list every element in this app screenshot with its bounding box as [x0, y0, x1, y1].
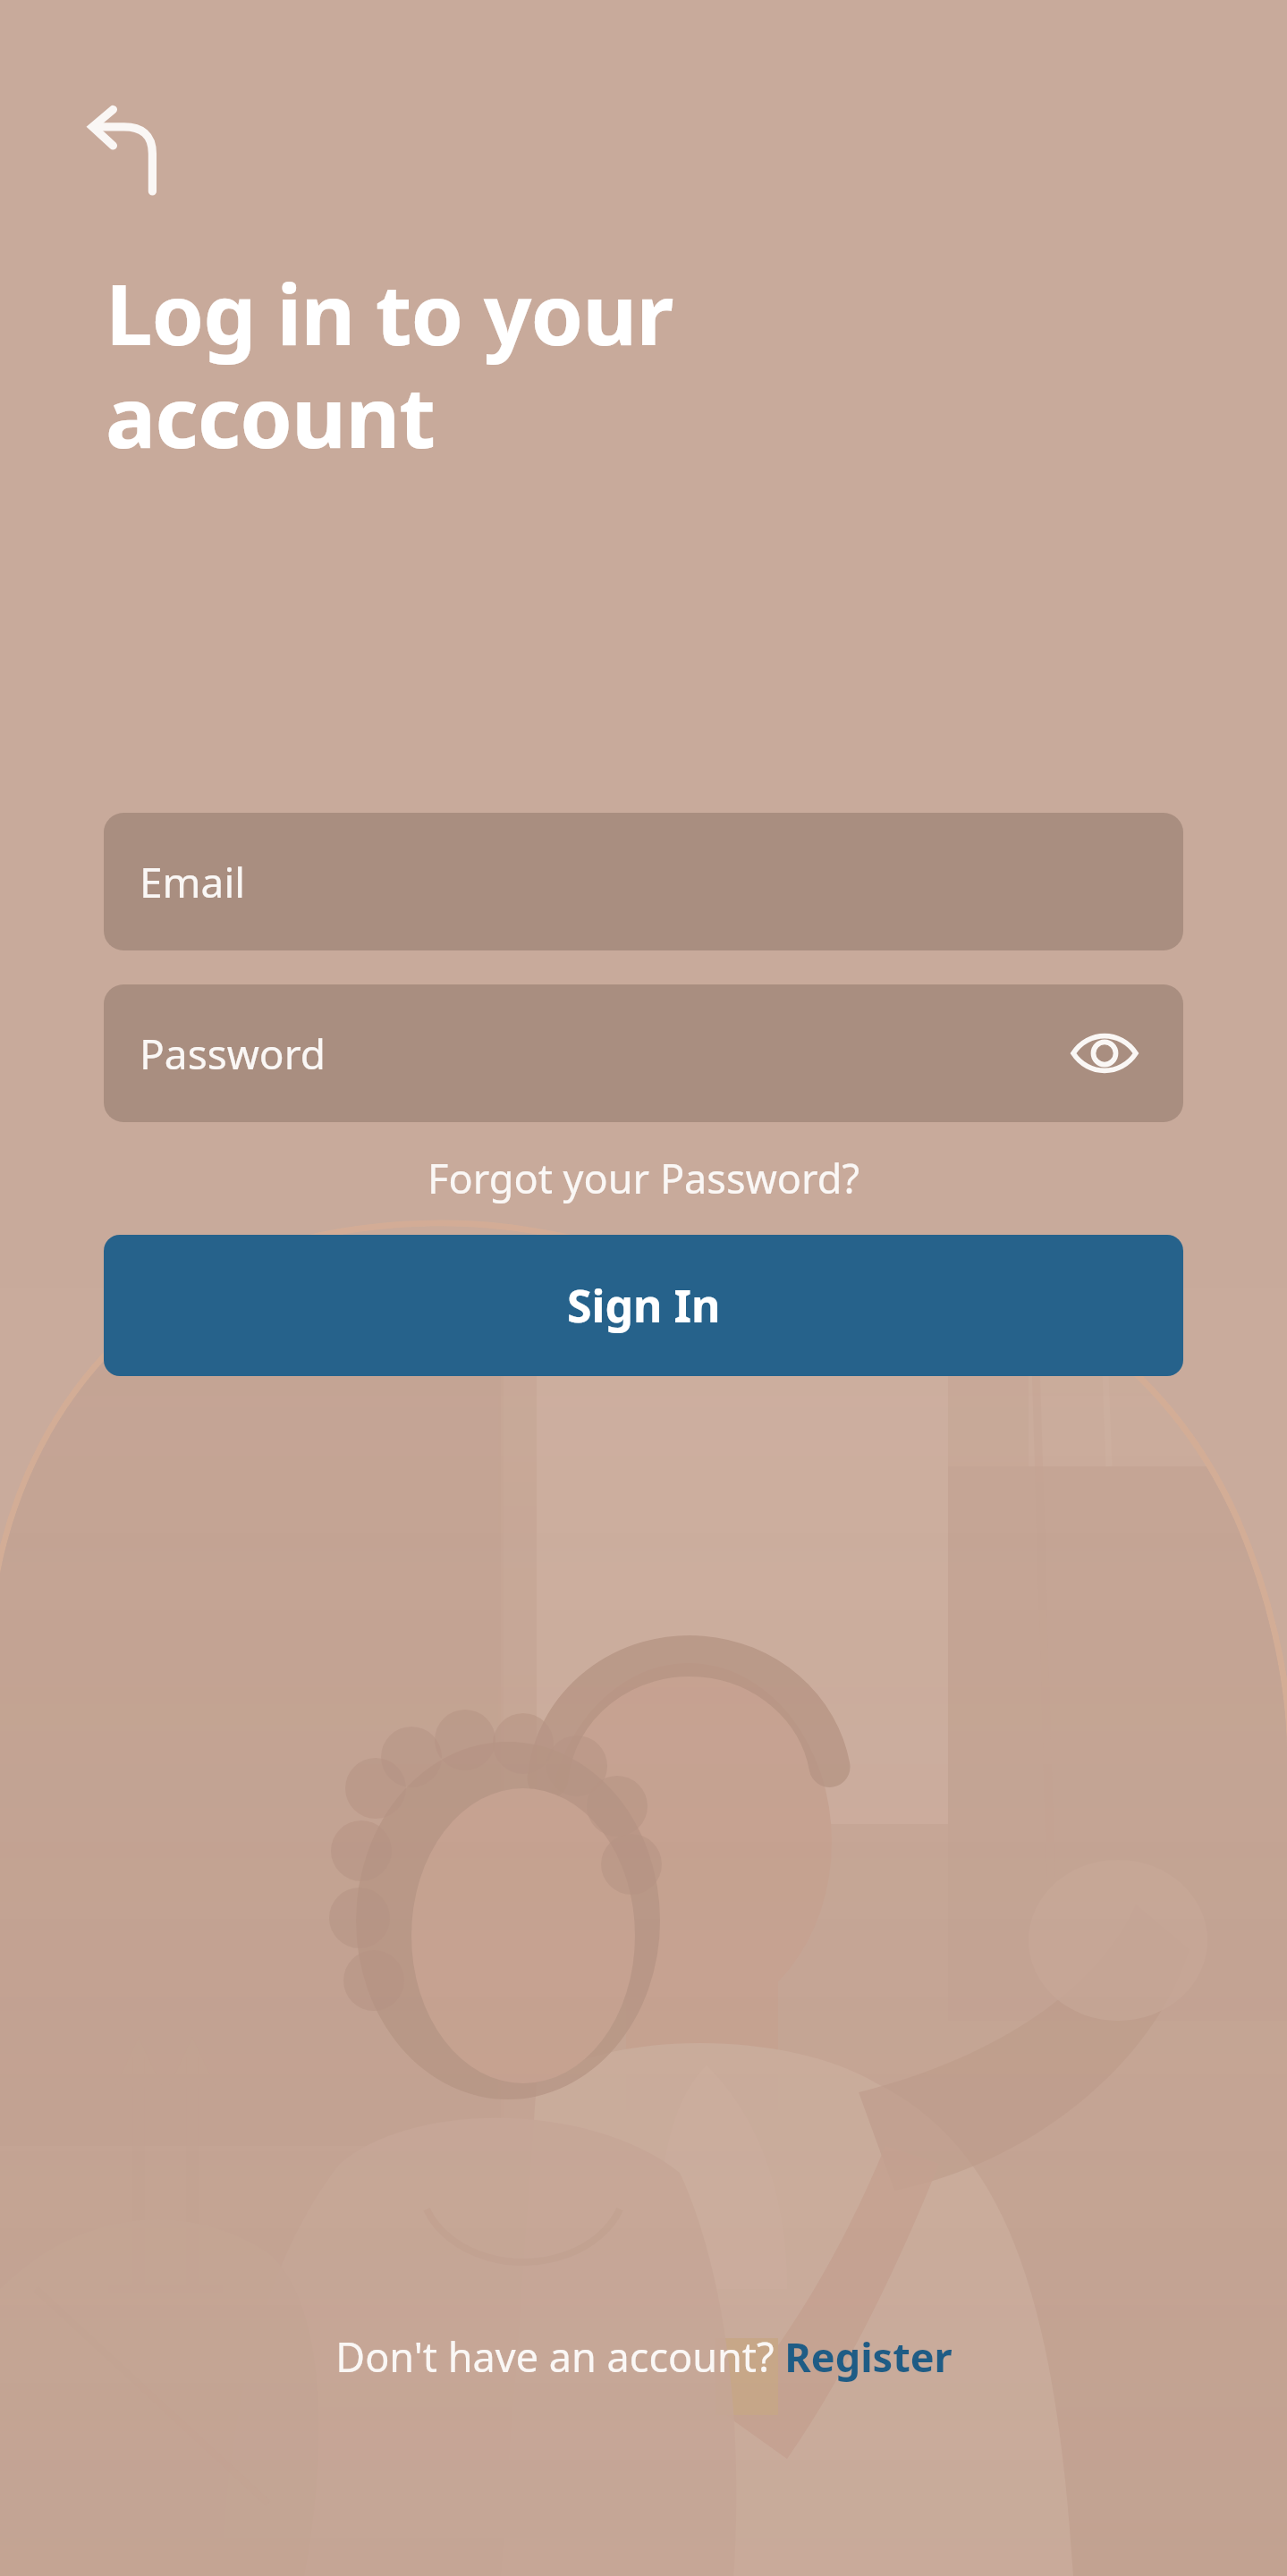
staticText: Forgot your Password? — [428, 1151, 859, 1205]
button[interactable]: Email — [104, 813, 1183, 950]
button[interactable]: Password — [104, 984, 1183, 1122]
button[interactable]: Back — [77, 100, 181, 204]
button[interactable]: Forgot your Password? — [0, 1140, 1287, 1215]
button[interactable]: Show password — [1062, 1010, 1147, 1096]
staticText: Log in to your account — [106, 256, 673, 473]
staticText: Email — [140, 854, 1147, 910]
button[interactable]: Sign In — [104, 1235, 1183, 1376]
staticText: Password — [140, 1026, 1062, 1082]
staticText: Sign In — [567, 1275, 721, 1336]
button[interactable]: Don't have an account? Register — [0, 2313, 1287, 2399]
staticText: Don't have an account? Register — [335, 2329, 953, 2384]
